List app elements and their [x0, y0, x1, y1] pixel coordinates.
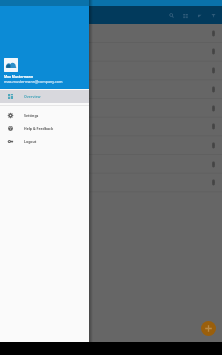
button[interactable]: More options — [209, 141, 218, 150]
button[interactable]: Add — [201, 321, 216, 336]
button[interactable]: Filter — [206, 8, 220, 22]
button[interactable]: More options — [209, 122, 218, 131]
button[interactable]: More options — [0, 24, 222, 43]
button[interactable]: Help & Feedback — [0, 122, 89, 135]
button[interactable]: Logout — [0, 135, 89, 148]
button[interactable]: Search — [164, 8, 178, 22]
staticText: Settings — [24, 113, 39, 118]
button[interactable]: More options — [0, 80, 222, 99]
button[interactable]: More options — [209, 160, 218, 169]
staticText: Help & Feedback — [24, 126, 54, 131]
button[interactable]: More options — [209, 85, 218, 94]
staticText: max.mustermann@company.com — [4, 79, 63, 84]
button[interactable]: More options — [209, 104, 218, 113]
button[interactable]: Overview — [0, 90, 89, 103]
button[interactable]: Settings — [0, 109, 89, 122]
staticText: Overview — [24, 94, 41, 99]
button[interactable]: More options — [0, 42, 222, 61]
button[interactable]: More options — [209, 47, 218, 56]
button[interactable]: More options — [0, 117, 222, 136]
staticText: Max Mustermann — [4, 74, 34, 78]
button[interactable]: More options — [209, 178, 218, 187]
staticText: Logout — [24, 139, 37, 144]
button[interactable]: More options — [209, 29, 218, 38]
button[interactable]: More options — [0, 155, 222, 174]
button[interactable]: More options — [209, 66, 218, 75]
button[interactable]: More options — [0, 173, 222, 192]
button[interactable]: More options — [0, 61, 222, 80]
button[interactable]: Share — [192, 8, 206, 22]
button[interactable]: More options — [0, 136, 222, 155]
button[interactable]: More options — [0, 99, 222, 118]
button[interactable]: Grid view — [178, 8, 192, 22]
